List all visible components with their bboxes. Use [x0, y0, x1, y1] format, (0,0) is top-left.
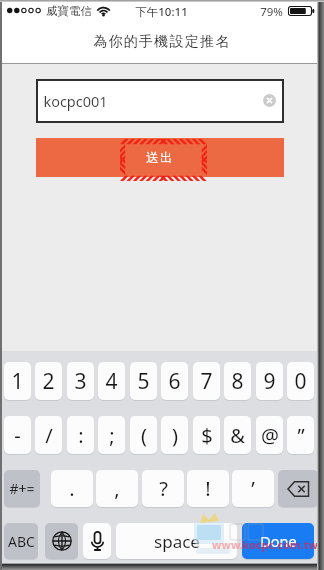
button[interactable]: )	[161, 416, 188, 454]
button[interactable]: Change keyboard	[45, 523, 78, 559]
button[interactable]: 9	[256, 362, 283, 400]
button[interactable]: ;	[98, 416, 125, 454]
staticText: :	[78, 422, 84, 449]
staticText: 6	[168, 367, 181, 396]
staticText: 0	[294, 367, 307, 396]
staticText: 4	[105, 367, 118, 396]
staticText: 5	[137, 367, 150, 396]
staticText: 9	[263, 367, 276, 396]
staticText: 為你的手機設定推名	[93, 33, 231, 51]
staticText: 下午10:11	[135, 4, 188, 20]
staticText: 1	[11, 367, 24, 396]
staticText: space	[154, 530, 200, 553]
staticText: /	[45, 422, 53, 449]
staticText: -	[14, 422, 21, 449]
staticText: 威寶電信	[46, 4, 92, 18]
staticText: ,	[114, 475, 120, 502]
button[interactable]: ”	[287, 416, 314, 454]
staticText: kocpc.com.tw	[242, 537, 318, 552]
button[interactable]: 8	[224, 362, 251, 400]
staticText: )	[172, 422, 178, 449]
staticText: ’	[251, 475, 255, 502]
staticText: 8	[231, 367, 244, 396]
staticText: ?	[159, 475, 168, 502]
staticText: ”	[297, 422, 305, 449]
button[interactable]: !	[187, 470, 229, 507]
button[interactable]: ,	[96, 470, 138, 507]
staticText: www.	[212, 537, 243, 552]
button[interactable]: &	[224, 416, 251, 454]
button[interactable]: 0	[287, 362, 314, 400]
button[interactable]: 7	[193, 362, 220, 400]
staticText: 送出	[146, 150, 174, 166]
staticText: .	[69, 475, 75, 502]
staticText: 3	[74, 367, 87, 396]
button[interactable]: /	[35, 416, 62, 454]
button[interactable]: 送出	[36, 138, 284, 177]
staticText: (	[141, 422, 147, 449]
staticText: 7	[200, 367, 213, 396]
staticText: 79%	[260, 4, 283, 20]
staticText: Done	[260, 531, 297, 551]
staticText: @	[261, 422, 279, 449]
staticText: ;	[109, 422, 115, 449]
button[interactable]: 4	[98, 362, 125, 400]
button[interactable]: space	[116, 523, 237, 559]
button[interactable]: -	[4, 416, 31, 454]
button[interactable]: 5	[130, 362, 157, 400]
button[interactable]: .	[51, 470, 93, 507]
staticText: !	[205, 475, 211, 502]
button[interactable]: Clear text	[263, 94, 276, 107]
button[interactable]: Dictation	[83, 523, 111, 559]
button[interactable]: 3	[67, 362, 94, 400]
button[interactable]: Delete	[278, 470, 318, 507]
button[interactable]: kocpc001	[36, 79, 284, 123]
button[interactable]: Done	[242, 523, 314, 559]
staticText: #+=	[9, 479, 35, 498]
staticText: $	[201, 422, 213, 449]
button[interactable]: 2	[35, 362, 62, 400]
button[interactable]: #+=	[4, 470, 40, 507]
button[interactable]: ?	[142, 470, 184, 507]
staticText: &	[230, 422, 245, 449]
button[interactable]: ’	[232, 470, 274, 507]
staticText: 2	[42, 367, 55, 396]
button[interactable]: 1	[4, 362, 31, 400]
button[interactable]: 6	[161, 362, 188, 400]
button[interactable]: @	[256, 416, 283, 454]
button[interactable]: ABC	[4, 523, 38, 559]
button[interactable]: (	[130, 416, 157, 454]
button[interactable]: $	[193, 416, 220, 454]
button[interactable]: :	[67, 416, 94, 454]
staticText: kocpc001	[43, 91, 108, 111]
staticText: ABC	[8, 532, 35, 551]
